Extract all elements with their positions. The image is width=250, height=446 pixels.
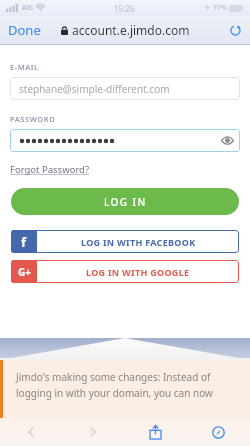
staticText: ✈ (205, 4, 211, 12)
button[interactable]: Forward (62, 418, 124, 446)
staticText: G+ (18, 265, 31, 279)
button[interactable]: Back (0, 418, 62, 446)
button[interactable]: LOG IN (11, 188, 239, 215)
staticText: account.e.jimdo.com (72, 22, 190, 38)
button[interactable]: stephane@simple-different.com (10, 77, 240, 100)
staticText: LOG IN WITH FACEBOOK (81, 236, 196, 248)
staticText: PASSWORD (10, 114, 56, 124)
button[interactable]: Show password (221, 136, 234, 145)
button[interactable]: Share (124, 418, 187, 446)
button[interactable]: Show password (10, 129, 240, 152)
staticText: E-MAIL (10, 62, 39, 72)
button[interactable]: G+ (11, 260, 239, 283)
button[interactable]: Done (0, 16, 49, 44)
staticText: Forgot Password? (10, 163, 90, 176)
staticText: stephane@simple-different.com (19, 82, 170, 96)
staticText: 15:26 (114, 3, 135, 14)
button[interactable]: Forgot Password? (10, 163, 90, 176)
staticText: LOG IN (104, 195, 147, 209)
button[interactable]: Jimdo's making some changes: Instead of … (0, 360, 250, 418)
button[interactable]: Tabs (187, 418, 250, 446)
staticText: f (21, 233, 27, 251)
staticText: LOG IN WITH GOOGLE (86, 266, 190, 278)
staticText: Done (8, 21, 41, 39)
staticText: Jimdo's making some changes: Instead of … (16, 370, 242, 399)
staticText: 97% (213, 3, 227, 13)
button[interactable]: f (11, 230, 239, 253)
staticText: AIS (22, 3, 33, 13)
button[interactable]: Reload (221, 16, 250, 44)
